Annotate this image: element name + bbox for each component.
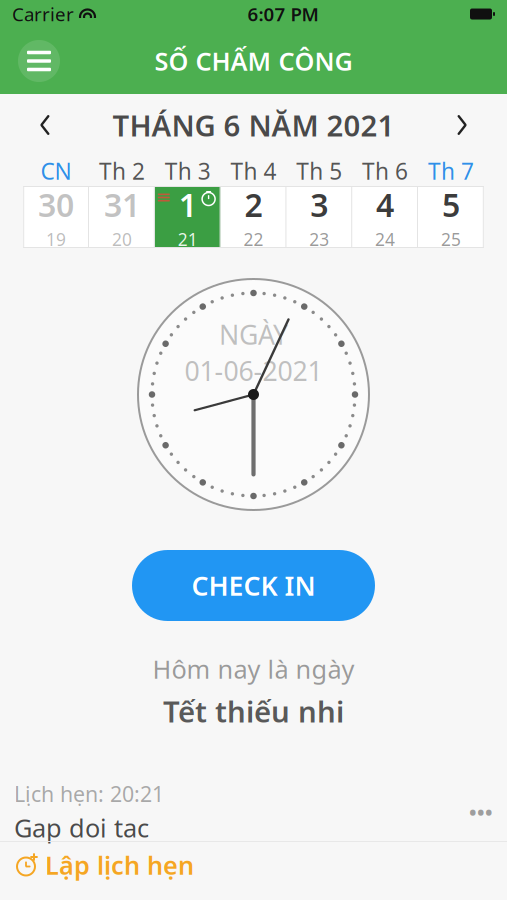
button[interactable]: CHECK IN — [132, 550, 375, 621]
button[interactable]: 4 — [352, 186, 418, 248]
staticText: 31 — [104, 183, 140, 226]
staticText: 23 — [309, 228, 329, 251]
button[interactable]: Previous month — [18, 102, 72, 148]
button[interactable]: Menu — [12, 34, 66, 88]
button[interactable]: Lập lịch hẹn — [0, 842, 507, 888]
staticText: 2 — [244, 183, 262, 226]
button[interactable]: 30 — [23, 186, 89, 248]
staticText: 1 — [179, 183, 197, 226]
staticText: Th 4 — [230, 156, 276, 186]
staticText: SỐ CHẤM CÔNG — [154, 44, 352, 78]
staticText: 4 — [376, 183, 394, 226]
staticText: 3 — [310, 183, 328, 226]
staticText: Lập lịch hẹn — [45, 848, 194, 882]
staticText: Lịch hẹn: 20:21 — [14, 779, 164, 808]
button[interactable]: 2 — [221, 186, 286, 248]
button[interactable]: Next month — [435, 102, 489, 148]
staticText: Hôm nay là ngày — [152, 652, 354, 686]
staticText: 24 — [375, 228, 395, 251]
staticText: 20 — [112, 228, 132, 251]
staticText: ••• — [469, 799, 493, 825]
staticText: Carrier — [12, 2, 74, 26]
staticText: Gap doi tac — [14, 811, 149, 844]
staticText: 5 — [442, 183, 460, 226]
staticText: CHECK IN — [191, 568, 315, 603]
staticText: Th 7 — [428, 156, 474, 186]
staticText: NGÀY — [219, 317, 288, 352]
staticText: Th 5 — [296, 156, 342, 186]
button[interactable]: 1 — [155, 186, 221, 248]
staticText: 6:07 PM — [247, 2, 318, 26]
staticText: 22 — [243, 228, 263, 251]
staticText: CN — [41, 156, 72, 186]
staticText: 25 — [441, 228, 461, 251]
staticText: 21 — [178, 228, 198, 251]
staticText: 19 — [46, 228, 66, 251]
staticText: Th 2 — [99, 156, 145, 186]
staticText: Th 6 — [362, 156, 408, 186]
staticText: 01-06-2021 — [184, 353, 322, 388]
staticText: Tết thiếu nhi — [163, 692, 344, 731]
button[interactable]: 5 — [418, 186, 484, 248]
button[interactable]: Lịch hẹn: 20:21 — [0, 783, 507, 841]
staticText: THÁNG 6 NĂM 2021 — [112, 105, 394, 144]
button[interactable]: 31 — [89, 186, 155, 248]
staticText: 30 — [38, 183, 74, 226]
staticText: Th 3 — [165, 156, 211, 186]
button[interactable]: 3 — [286, 186, 352, 248]
